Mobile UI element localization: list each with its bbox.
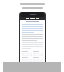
button[interactable]: Form field xyxy=(22,51,32,56)
button[interactable]: Form field xyxy=(33,51,43,56)
button[interactable]: Phone preview xyxy=(19,12,46,72)
button[interactable]: App bar xyxy=(20,17,45,20)
button[interactable]: Form field xyxy=(22,57,32,62)
button[interactable]: Form field xyxy=(33,57,43,62)
